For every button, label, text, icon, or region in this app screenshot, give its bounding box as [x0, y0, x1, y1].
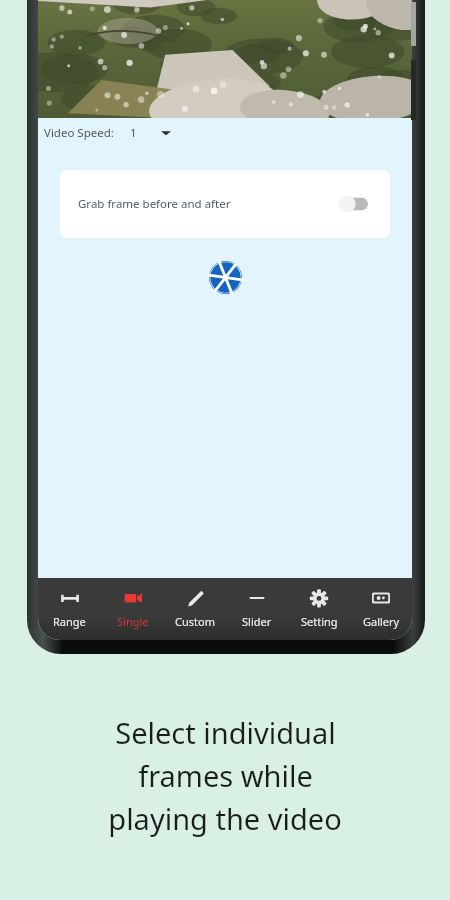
staticText: Select individual — [115, 713, 336, 752]
button[interactable]: Single — [101, 578, 164, 640]
staticText: Gallery — [363, 614, 400, 629]
staticText: Single — [117, 614, 149, 629]
button[interactable]: Custom — [164, 578, 226, 640]
button[interactable]: 1 — [130, 120, 194, 146]
staticText: Range — [53, 614, 86, 629]
button[interactable]: Capture frame — [205, 257, 245, 297]
button[interactable]: Slider — [226, 578, 288, 640]
button[interactable]: Range — [38, 578, 101, 640]
staticText: frames while — [138, 756, 313, 795]
staticText: Video Speed: — [44, 125, 114, 141]
staticText: Setting — [301, 614, 338, 629]
staticText: Slider — [242, 614, 272, 629]
button[interactable]: Grab frame before and after — [60, 170, 390, 238]
button[interactable]: Gallery — [350, 578, 412, 640]
staticText: Custom — [175, 614, 215, 629]
button[interactable]: Setting — [288, 578, 350, 640]
staticText: 1 — [130, 125, 137, 141]
staticText: Grab frame before and after — [78, 196, 231, 212]
staticText: playing the video — [108, 799, 342, 838]
